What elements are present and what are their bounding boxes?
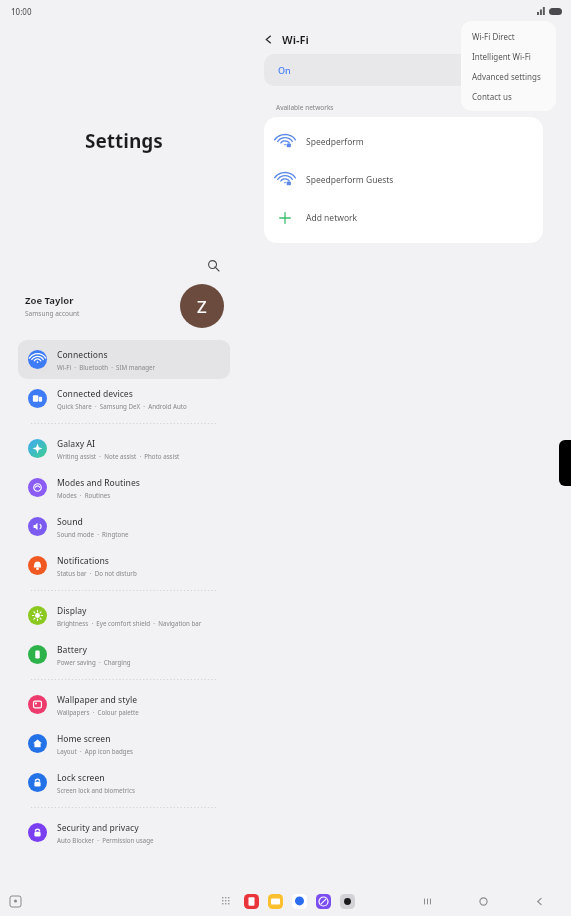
staticText: Wallpapers · Colour palette — [57, 708, 139, 716]
staticText: Wi-Fi Direct — [472, 31, 515, 42]
staticText: Sound — [57, 516, 83, 528]
staticText: Notifications — [57, 555, 109, 567]
staticText: Home screen — [57, 733, 111, 745]
button[interactable]: Modes and Routines — [18, 468, 230, 507]
button[interactable]: Home screen — [18, 724, 230, 763]
button[interactable]: Back — [529, 891, 549, 911]
button[interactable]: Home — [473, 891, 493, 911]
button[interactable]: messages — [292, 894, 307, 909]
staticText: Sound mode · Ringtone — [57, 530, 129, 538]
staticText: Wallpaper and style — [57, 694, 138, 706]
staticText: 10:00 — [11, 6, 32, 17]
staticText: Wi-Fi — [282, 32, 309, 47]
button[interactable]: Galaxy AI — [18, 429, 230, 468]
staticText: Screen lock and biometrics — [57, 786, 135, 794]
staticText: Samsung account — [25, 309, 80, 318]
staticText: Quick Share · Samsung DeX · Android Auto — [57, 402, 187, 410]
staticText: Connected devices — [57, 388, 133, 400]
staticText: Speedperform Guests — [306, 174, 394, 186]
staticText: Available networks — [276, 103, 334, 112]
button[interactable]: Battery — [18, 635, 230, 674]
staticText: On — [278, 64, 291, 76]
button[interactable]: Search settings — [203, 255, 224, 276]
button[interactable]: Zoe Taylor — [0, 283, 248, 329]
staticText: Writing assist · Note assist · Photo ass… — [57, 452, 180, 460]
staticText: Contact us — [472, 91, 512, 102]
button[interactable]: Wi-Fi Direct — [461, 26, 556, 46]
button[interactable]: Add network — [264, 199, 543, 237]
staticText: Battery — [57, 644, 87, 656]
button[interactable]: Advanced settings — [461, 66, 556, 86]
staticText: Advanced settings — [472, 71, 541, 82]
staticText: Status bar · Do not disturb — [57, 569, 137, 577]
button[interactable]: Display — [18, 596, 230, 635]
button[interactable]: Recents — [417, 891, 437, 911]
button[interactable]: Intelligent Wi-Fi — [461, 46, 556, 66]
button[interactable]: files — [268, 894, 283, 909]
staticText: Layout · App icon badges — [57, 747, 134, 755]
button[interactable]: Sound — [18, 507, 230, 546]
staticText: Wi-Fi · Bluetooth · SIM manager — [57, 363, 156, 371]
staticText: Connections — [57, 349, 108, 361]
button[interactable]: notes — [244, 894, 259, 909]
staticText: Display — [57, 605, 87, 617]
button[interactable]: Back — [258, 29, 278, 49]
staticText: Settings — [85, 128, 163, 154]
button[interactable]: Speedperform — [264, 123, 543, 161]
staticText: Power saving · Charging — [57, 658, 131, 666]
button[interactable]: Contact us — [461, 86, 556, 106]
button[interactable]: internet — [316, 894, 331, 909]
staticText: Brightness · Eye comfort shield · Naviga… — [57, 619, 202, 627]
staticText: Lock screen — [57, 772, 105, 784]
button[interactable]: Notifications — [18, 546, 230, 585]
staticText: Intelligent Wi-Fi — [472, 51, 531, 62]
button[interactable]: camera — [340, 894, 355, 909]
button[interactable]: Edge panel handle — [559, 440, 571, 486]
staticText: Modes and Routines — [57, 477, 140, 489]
button[interactable]: Wallpaper and style — [18, 685, 230, 724]
staticText: Add network — [306, 212, 358, 224]
button[interactable]: Connections — [18, 340, 230, 379]
staticText: Speedperform — [306, 136, 364, 148]
button[interactable]: On — [264, 54, 543, 86]
button[interactable]: Lock screen — [18, 763, 230, 802]
staticText: Modes · Routines — [57, 491, 111, 499]
button[interactable]: Recent apps panel — [5, 891, 25, 911]
staticText: Auto Blocker · Permission usage — [57, 836, 154, 844]
staticText: Galaxy AI — [57, 438, 96, 450]
button[interactable]: Apps — [217, 892, 235, 910]
staticText: Security and privacy — [57, 822, 139, 834]
staticText: Z — [197, 295, 207, 318]
button[interactable]: Security and privacy — [18, 813, 230, 852]
staticText: Zoe Taylor — [25, 294, 74, 307]
button[interactable]: Speedperform Guests — [264, 161, 543, 199]
button[interactable]: Connected devices — [18, 379, 230, 418]
